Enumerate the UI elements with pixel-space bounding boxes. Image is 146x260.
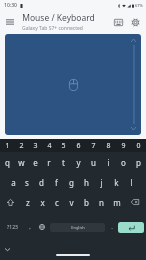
button[interactable]: z xyxy=(21,192,35,212)
staticText: g xyxy=(69,177,74,188)
button[interactable]: n xyxy=(94,192,109,212)
staticText: j xyxy=(100,177,103,188)
button[interactable]: . xyxy=(106,212,117,242)
button[interactable]: u xyxy=(86,152,101,172)
staticText: 0 xyxy=(136,141,141,151)
button[interactable]: h xyxy=(79,172,94,192)
button[interactable]: e xyxy=(28,152,42,172)
button[interactable]: Touchpad area xyxy=(5,34,141,135)
staticText: 6 xyxy=(76,141,81,151)
button[interactable]: a xyxy=(6,172,20,192)
button[interactable]: 9 xyxy=(116,139,131,152)
button[interactable]: q xyxy=(0,152,14,172)
button[interactable]: , xyxy=(24,212,35,242)
staticText: r xyxy=(47,157,51,168)
button[interactable]: 8 xyxy=(101,139,116,152)
staticText: o xyxy=(121,157,126,168)
button[interactable]: k xyxy=(109,172,124,192)
staticText: s xyxy=(25,177,29,188)
staticText: q xyxy=(5,157,10,168)
staticText: t xyxy=(62,157,65,168)
staticText: 8 xyxy=(106,141,111,151)
button[interactable]: t xyxy=(56,152,71,172)
staticText: p xyxy=(136,157,141,168)
button[interactable]: g xyxy=(64,172,79,192)
staticText: 10:30 xyxy=(4,2,17,9)
button[interactable]: 3 xyxy=(28,139,42,152)
button[interactable]: y xyxy=(71,152,86,172)
button[interactable]: i xyxy=(101,152,116,172)
button[interactable]: p xyxy=(131,152,146,172)
button[interactable]: 1 xyxy=(0,139,14,152)
staticText: 67% xyxy=(135,3,143,8)
button[interactable]: 4 xyxy=(42,139,56,152)
button[interactable]: x xyxy=(35,192,49,212)
staticText: d xyxy=(39,177,44,188)
staticText: 9 xyxy=(121,141,126,151)
staticText: a xyxy=(11,177,16,188)
staticText: l xyxy=(130,177,133,188)
button[interactable]: Shift xyxy=(0,192,21,212)
button[interactable]: l xyxy=(124,172,139,192)
staticText: m xyxy=(113,197,121,208)
button[interactable]: 0 xyxy=(131,139,146,152)
button[interactable]: m xyxy=(109,192,124,212)
staticText: Mouse / Keyboard xyxy=(22,12,95,24)
staticText: 2 xyxy=(19,141,24,151)
staticText: y xyxy=(76,157,81,168)
staticText: f xyxy=(55,177,58,188)
staticText: 7 xyxy=(91,141,96,151)
staticText: 3 xyxy=(33,141,38,151)
staticText: w xyxy=(18,157,25,168)
button[interactable]: b xyxy=(79,192,94,212)
staticText: ?123 xyxy=(7,224,18,231)
button[interactable]: 6 xyxy=(71,139,86,152)
button[interactable]: o xyxy=(116,152,131,172)
staticText: i xyxy=(107,157,110,168)
button[interactable]: j xyxy=(94,172,109,192)
button[interactable]: Backspace xyxy=(124,192,146,212)
staticText: 5 xyxy=(61,141,66,151)
button[interactable]: Settings xyxy=(127,14,144,31)
staticText: English xyxy=(71,225,85,230)
button[interactable]: ?123 xyxy=(0,212,24,242)
button[interactable]: f xyxy=(49,172,64,192)
button[interactable]: w xyxy=(14,152,28,172)
button[interactable]: c xyxy=(49,192,64,212)
button[interactable]: Scroll bar xyxy=(130,39,137,130)
staticText: h xyxy=(84,177,89,188)
button[interactable]: Space, English xyxy=(50,223,105,232)
staticText: n xyxy=(99,197,104,208)
button[interactable]: v xyxy=(64,192,79,212)
staticText: b xyxy=(84,197,89,208)
button[interactable]: 7 xyxy=(86,139,101,152)
button[interactable]: Keyboard xyxy=(110,14,127,31)
button[interactable]: 5 xyxy=(56,139,71,152)
button[interactable]: Enter xyxy=(118,222,144,233)
staticText: u xyxy=(91,157,96,168)
staticText: v xyxy=(69,197,74,208)
button[interactable]: Navigation menu xyxy=(2,14,18,30)
button[interactable]: Hide keyboard xyxy=(1,243,14,256)
staticText: x xyxy=(40,197,45,208)
button[interactable]: 2 xyxy=(14,139,28,152)
staticText: 1 xyxy=(5,141,10,151)
staticText: Galaxy Tab S7+ connected xyxy=(22,25,83,32)
staticText: , xyxy=(29,223,31,231)
staticText: e xyxy=(33,157,38,168)
staticText: k xyxy=(114,177,119,188)
staticText: 4 xyxy=(47,141,52,151)
button[interactable]: r xyxy=(42,152,56,172)
button[interactable]: d xyxy=(34,172,49,192)
staticText: c xyxy=(55,197,59,208)
button[interactable]: s xyxy=(20,172,34,192)
staticText: z xyxy=(26,197,30,208)
button[interactable]: Change language xyxy=(35,212,49,242)
staticText: . xyxy=(111,223,113,231)
